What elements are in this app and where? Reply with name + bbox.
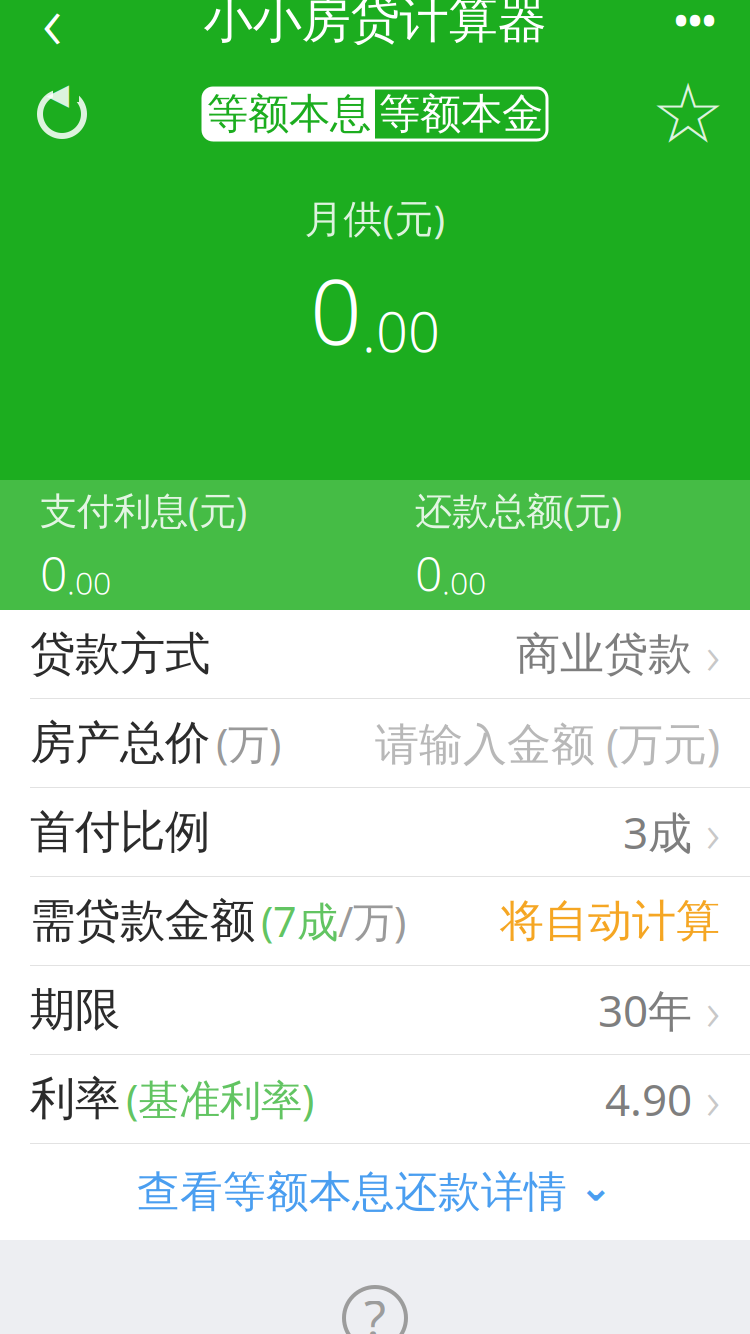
staticText: ? xyxy=(364,1284,386,1334)
button[interactable]: 期限 xyxy=(0,966,750,1055)
button[interactable]: 需贷款金额 xyxy=(0,877,750,966)
button[interactable]: Help xyxy=(331,1274,419,1334)
button[interactable]: 贷款方式 xyxy=(0,610,750,699)
staticText: 等额本息 xyxy=(207,89,371,139)
staticText: /万) xyxy=(338,894,406,948)
staticText: 还款总额(元) xyxy=(415,485,622,535)
staticText: ☆ xyxy=(651,67,725,161)
staticText: (万) xyxy=(216,716,281,770)
button[interactable]: 查看等额本息还款详情 xyxy=(0,1144,750,1240)
staticText: 贷款方式 xyxy=(30,626,210,682)
staticText: 将自动计算 xyxy=(500,894,720,948)
staticText: 3成 xyxy=(623,803,692,861)
staticText: 月供(元) xyxy=(304,192,445,243)
button[interactable]: Favorite xyxy=(640,78,736,150)
staticText: ⌄ xyxy=(579,1164,613,1210)
button[interactable]: 利率 xyxy=(0,1055,750,1144)
staticText: 房产总价 xyxy=(30,715,210,771)
button[interactable]: 等额本金 xyxy=(375,88,547,140)
staticText: 30年 xyxy=(598,981,692,1039)
button[interactable]: 首付比例 xyxy=(0,788,750,877)
staticText: › xyxy=(706,975,720,1045)
staticText: 查看等额本息还款详情 xyxy=(137,1166,567,1218)
staticText: ◀ xyxy=(46,77,69,111)
staticText: 小小房贷计算器 xyxy=(203,0,546,50)
staticText: 支付利息(元) xyxy=(40,485,247,535)
button[interactable]: 房产总价 xyxy=(0,699,750,788)
staticText: 商业贷款 xyxy=(516,627,692,681)
staticText: .00 xyxy=(442,561,486,604)
staticText: 0 xyxy=(40,541,67,605)
staticText: › xyxy=(706,619,720,689)
staticText: ‹ xyxy=(42,0,62,71)
staticText: .00 xyxy=(67,561,111,604)
staticText: 4.90 xyxy=(605,1070,692,1128)
button[interactable]: More options xyxy=(652,0,738,62)
staticText: 利率 xyxy=(30,1071,120,1127)
staticText: 等额本金 xyxy=(379,89,543,139)
staticText: 首付比例 xyxy=(30,804,210,860)
staticText: 期限 xyxy=(30,982,120,1038)
staticText: › xyxy=(706,797,720,867)
staticText: ••• xyxy=(674,0,716,45)
staticText: (基准利率) xyxy=(126,1072,314,1126)
staticText: › xyxy=(706,1064,720,1134)
staticText: 0 xyxy=(415,541,442,605)
staticText: 请输入金额 (万元) xyxy=(375,714,720,772)
button[interactable]: Reset xyxy=(14,78,110,150)
button[interactable]: 等额本息 xyxy=(203,88,375,140)
staticText: .00 xyxy=(362,293,440,368)
button[interactable]: Back xyxy=(12,0,92,62)
staticText: 需贷款金额 xyxy=(30,893,255,949)
staticText: 0 xyxy=(310,249,362,370)
staticText: (7成 xyxy=(261,894,338,948)
